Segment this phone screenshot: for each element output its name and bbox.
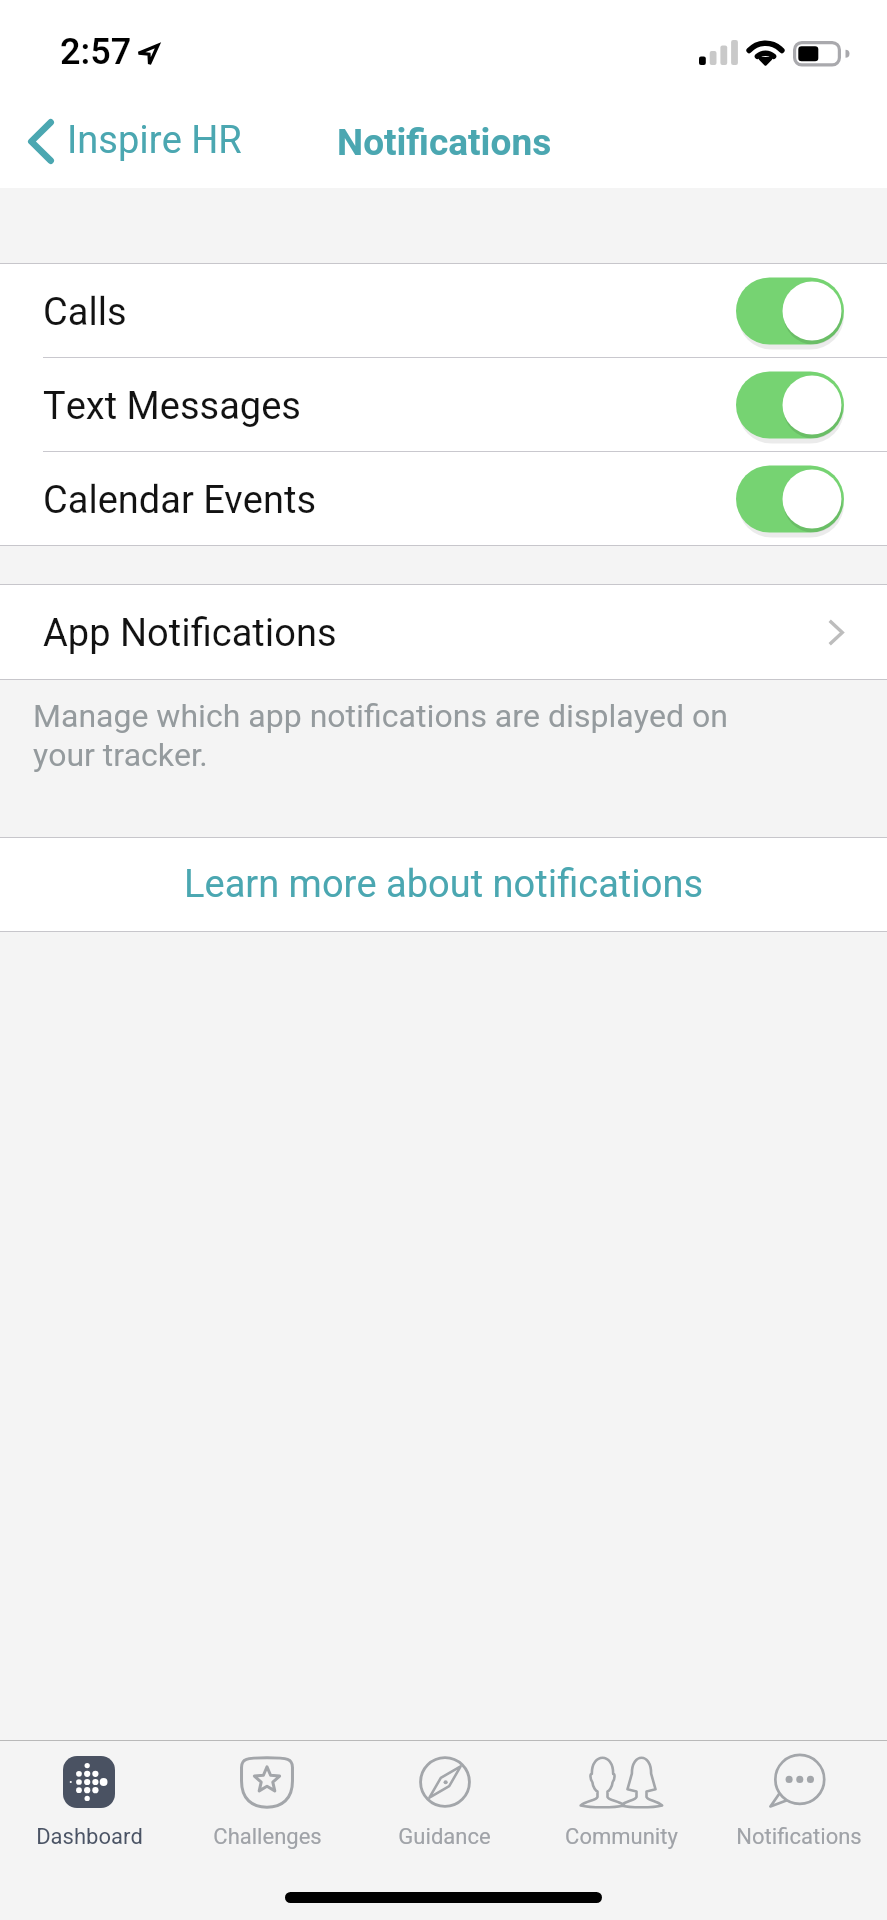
staticText: App Notifications bbox=[43, 606, 337, 662]
button[interactable]: Notifications bbox=[710, 1741, 887, 1859]
staticText: Inspire HR bbox=[67, 113, 242, 169]
staticText: Community bbox=[565, 1821, 678, 1853]
staticText: Notifications bbox=[337, 116, 552, 170]
button[interactable]: Toggle on bbox=[736, 465, 844, 533]
button[interactable]: Challenges bbox=[178, 1741, 356, 1859]
staticText: Dashboard bbox=[36, 1821, 143, 1853]
staticText: Text Messages bbox=[43, 379, 301, 435]
staticText: Notifications bbox=[736, 1821, 862, 1853]
staticText: Learn more about notifications bbox=[184, 857, 704, 913]
button[interactable]: Inspire HR bbox=[0, 100, 242, 188]
staticText: Challenges bbox=[213, 1821, 322, 1853]
staticText: Calls bbox=[43, 285, 127, 341]
staticText: Guidance bbox=[398, 1821, 491, 1853]
button[interactable]: Toggle on bbox=[736, 277, 844, 345]
button[interactable]: Guidance bbox=[356, 1741, 533, 1859]
button[interactable]: Toggle on bbox=[736, 371, 844, 439]
staticText: Calendar Events bbox=[43, 473, 316, 529]
button[interactable]: Dashboard bbox=[0, 1741, 178, 1859]
button[interactable]: Community bbox=[533, 1741, 710, 1859]
staticText: Manage which app notifications are displ… bbox=[33, 693, 757, 779]
button[interactable]: App Notifications bbox=[0, 585, 887, 679]
button[interactable]: Learn more about notifications bbox=[0, 838, 887, 931]
staticText: 2:57 bbox=[60, 26, 132, 79]
